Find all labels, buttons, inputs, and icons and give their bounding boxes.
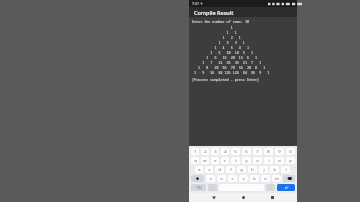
- staticText: n: [264, 176, 267, 182]
- button[interactable]: ,: [208, 184, 217, 191]
- button[interactable]: 3: [211, 148, 219, 155]
- button[interactable]: x: [217, 175, 226, 182]
- staticText: d: [218, 167, 221, 173]
- staticText: u: [256, 158, 259, 164]
- staticText: w: [203, 158, 207, 164]
- staticText: 1 2 1: [192, 35, 245, 40]
- button[interactable]: 6: [242, 148, 251, 155]
- staticText: 2: [204, 149, 207, 155]
- button[interactable]: 7: [253, 148, 262, 155]
- button[interactable]: o: [275, 157, 284, 164]
- staticText: 7: [256, 149, 259, 155]
- staticText: 1 5 10 10 5 1: [192, 50, 258, 55]
- button[interactable]: Shift: [191, 175, 204, 182]
- staticText: 8: [267, 149, 270, 155]
- staticText: ,: [212, 185, 213, 190]
- staticText: Enter the number of rows: 10: [192, 19, 249, 24]
- button[interactable]: Backspace: [283, 175, 295, 182]
- staticText: z: [210, 176, 212, 182]
- button[interactable]: g: [237, 166, 246, 173]
- staticText: 1 9 36 84 126 126 84 36 9 1: [192, 70, 274, 75]
- staticText: c: [231, 176, 234, 182]
- staticText: r: [224, 158, 226, 164]
- button[interactable]: b: [250, 175, 259, 182]
- staticText: l: [285, 167, 287, 173]
- staticText: 1 1: [192, 30, 241, 35]
- staticText: y: [245, 158, 248, 164]
- button[interactable]: q: [191, 157, 199, 164]
- button[interactable]: w: [201, 157, 209, 164]
- button[interactable]: 0: [286, 148, 295, 155]
- button[interactable]: 2: [201, 148, 209, 155]
- button[interactable]: Back: [209, 193, 218, 202]
- button[interactable]: 4: [221, 148, 229, 155]
- staticText: k: [273, 167, 276, 173]
- button[interactable]: .: [266, 184, 275, 191]
- staticText: 1 8 28 56 70 56 28 8 1: [192, 65, 270, 70]
- staticText: 3: [214, 149, 217, 155]
- staticText: [Process completed - press Enter]: [192, 77, 260, 82]
- staticText: 1: [192, 25, 237, 30]
- button[interactable]: l: [281, 166, 290, 173]
- button[interactable]: Recents: [268, 193, 277, 202]
- staticText: 9: [278, 149, 281, 155]
- staticText: x: [220, 176, 223, 182]
- button[interactable]: 8: [264, 148, 273, 155]
- button[interactable]: Home: [239, 193, 248, 202]
- button[interactable]: s: [205, 166, 213, 173]
- button[interactable]: z: [206, 175, 215, 182]
- button[interactable]: 5: [231, 148, 240, 155]
- button[interactable]: t: [231, 157, 240, 164]
- staticText: 1 3 3 1: [192, 40, 249, 45]
- button[interactable]: m: [272, 175, 281, 182]
- button[interactable]: e: [211, 157, 219, 164]
- button[interactable]: d: [215, 166, 224, 173]
- staticText: 1 6 15 20 15 6 1: [192, 55, 262, 60]
- button[interactable]: 9: [275, 148, 284, 155]
- staticText: j: [263, 167, 265, 173]
- staticText: Compile Result: [194, 9, 234, 16]
- staticText: 1: [194, 149, 197, 155]
- button[interactable]: 1: [191, 148, 199, 155]
- staticText: e: [214, 158, 217, 164]
- button[interactable]: i: [264, 157, 273, 164]
- staticText: p: [289, 158, 292, 164]
- button[interactable]: y: [242, 157, 251, 164]
- button[interactable]: v: [239, 175, 248, 182]
- staticText: v: [242, 176, 245, 182]
- staticText: 1 7 21 35 35 21 7 1: [192, 60, 266, 65]
- staticText: g: [240, 167, 243, 173]
- button[interactable]: ?123: [191, 184, 206, 191]
- staticText: i: [268, 158, 270, 164]
- staticText: b: [253, 176, 256, 182]
- button[interactable]: r: [221, 157, 229, 164]
- button[interactable]: h: [248, 166, 257, 173]
- button[interactable]: u: [253, 157, 262, 164]
- button[interactable]: c: [228, 175, 237, 182]
- staticText: o: [278, 158, 281, 164]
- staticText: t: [235, 158, 237, 164]
- staticText: 4: [224, 149, 227, 155]
- staticText: 7:21: [192, 1, 199, 6]
- staticText: 5: [234, 149, 237, 155]
- staticText: f: [230, 167, 232, 173]
- button[interactable]: f: [226, 166, 235, 173]
- staticText: 6: [245, 149, 248, 155]
- button[interactable]: a: [195, 166, 203, 173]
- staticText: ?123: [196, 186, 202, 190]
- staticText: s: [208, 167, 211, 173]
- staticText: 0: [289, 149, 292, 155]
- staticText: q: [194, 158, 197, 164]
- staticText: 1 4 6 4 1: [192, 45, 254, 50]
- button[interactable]: k: [270, 166, 279, 173]
- staticText: a: [198, 167, 201, 173]
- staticText: .: [270, 185, 271, 190]
- button[interactable]: j: [259, 166, 268, 173]
- button[interactable]: Enter: [277, 184, 295, 191]
- staticText: h: [251, 167, 254, 173]
- button[interactable]: n: [261, 175, 270, 182]
- staticText: m: [275, 176, 279, 182]
- button[interactable]: p: [286, 157, 295, 164]
